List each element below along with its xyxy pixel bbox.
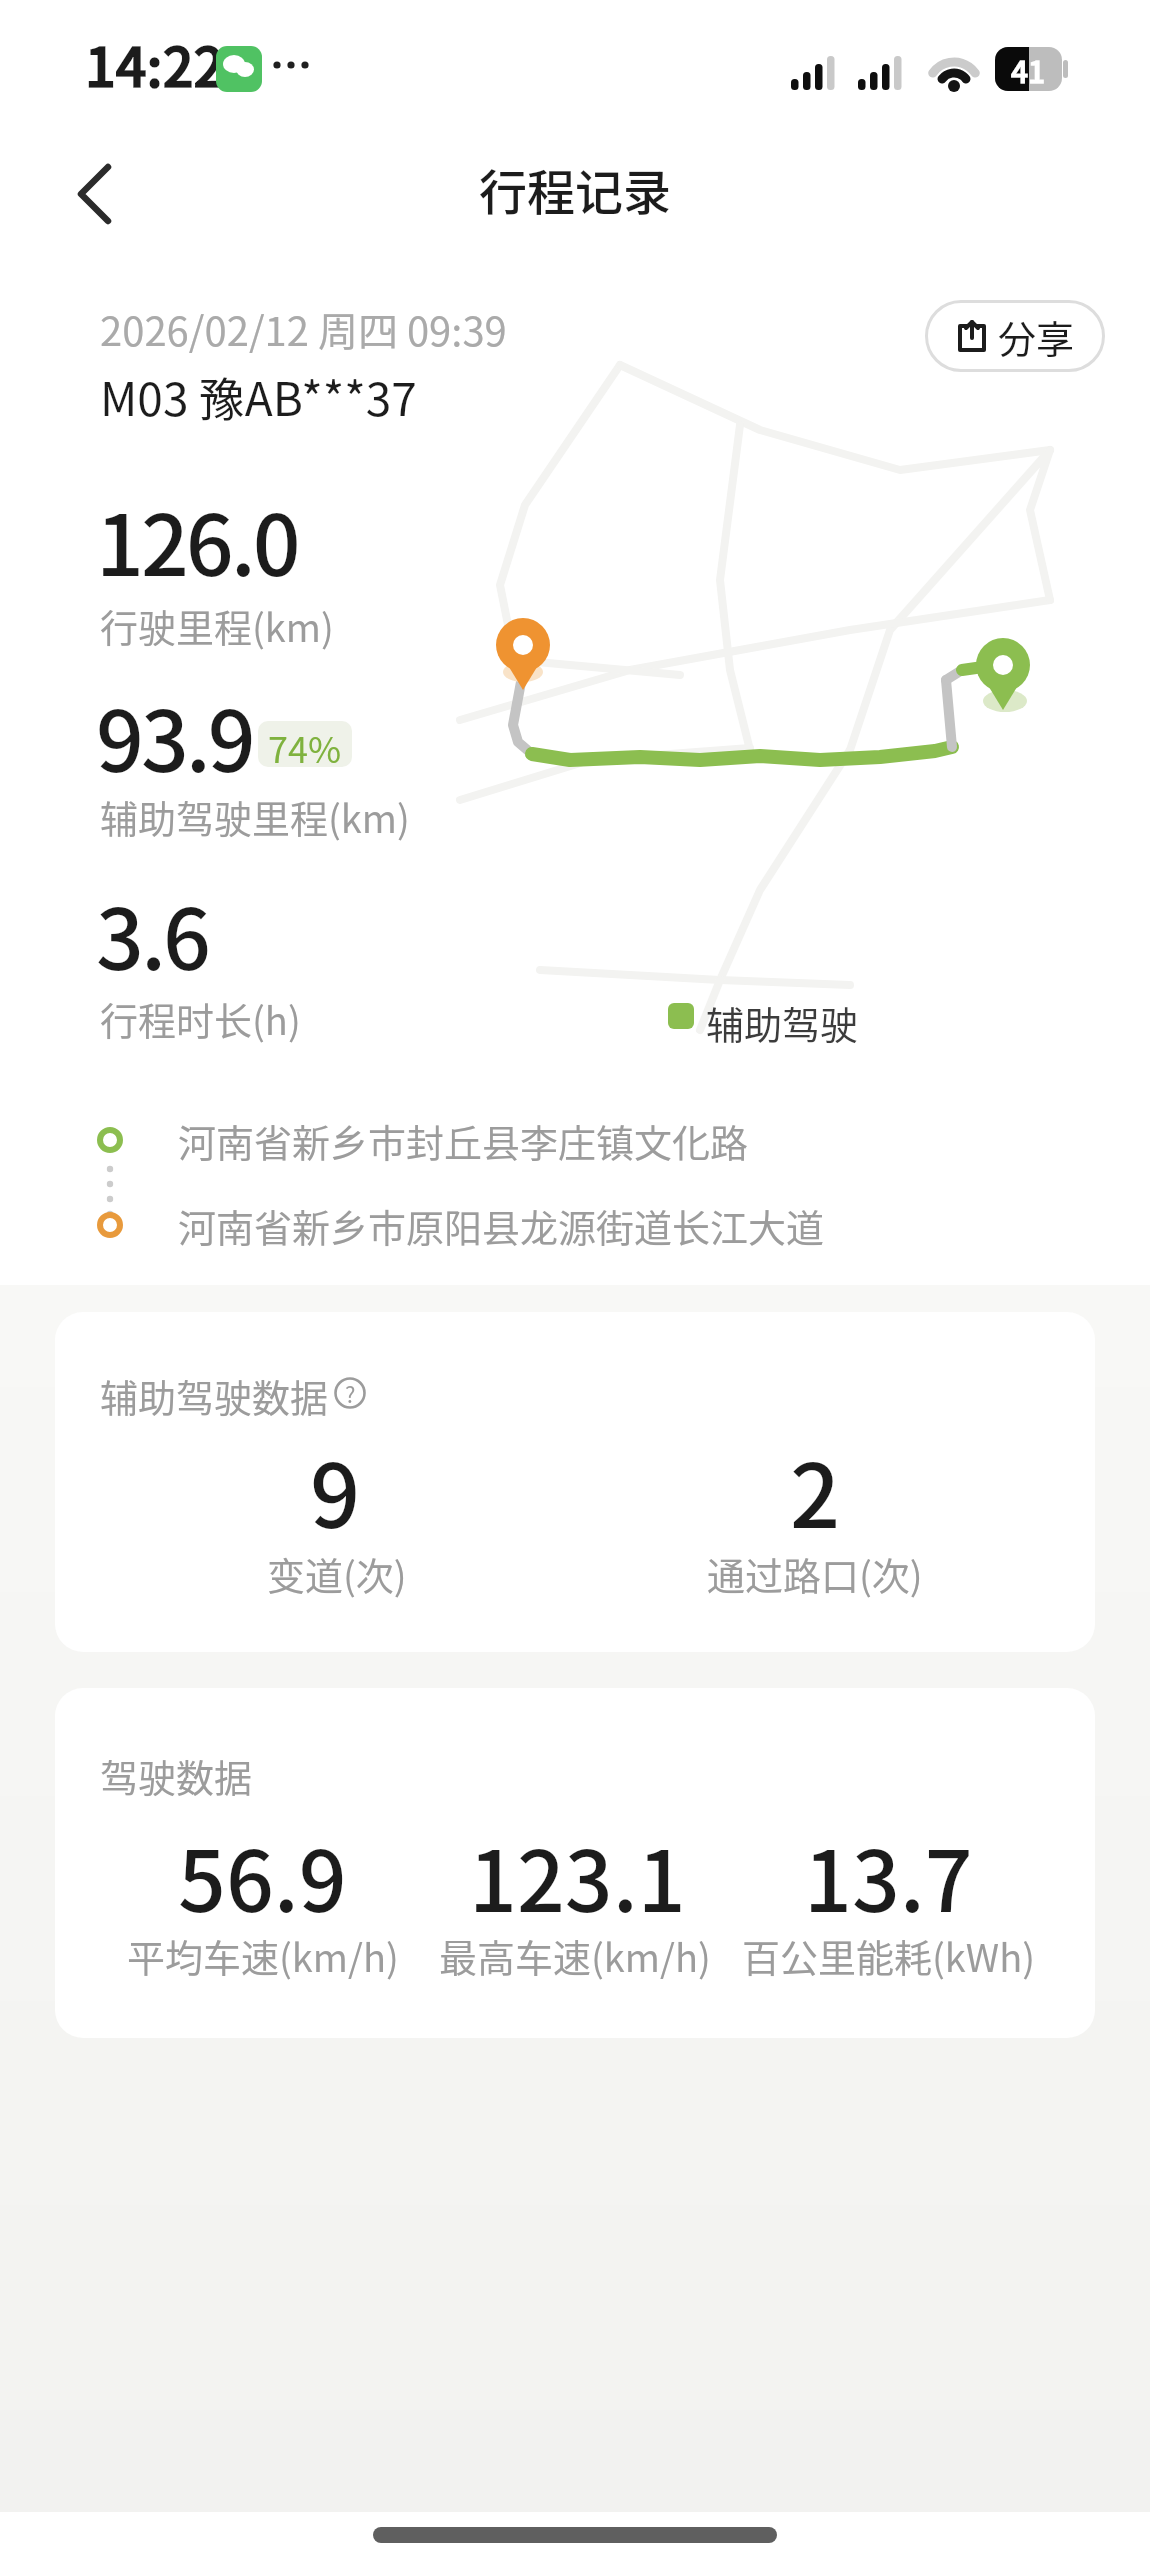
staticText: 13.7 xyxy=(804,1815,973,1935)
staticText: 河南省新乡市原阳县龙源街道长江大道 xyxy=(178,1198,825,1253)
staticText: 驾驶数据 xyxy=(100,1748,253,1803)
staticText: 最高车速(km/h) xyxy=(439,1928,711,1983)
staticText: 辅助驾驶数据 xyxy=(100,1368,329,1423)
staticText: 126.0 xyxy=(96,479,298,601)
staticText: M03 豫AB***37 xyxy=(100,363,417,430)
button[interactable] xyxy=(50,150,140,240)
staticText: 分享 xyxy=(998,309,1075,364)
staticText: 平均车速(km/h) xyxy=(127,1928,399,1983)
button[interactable]: 分享 xyxy=(925,300,1105,372)
button[interactable]: ? xyxy=(328,1371,372,1415)
staticText: 变道(次) xyxy=(267,1546,407,1601)
staticText: 3.6 xyxy=(96,873,208,995)
staticText: 14:22 xyxy=(85,24,225,102)
staticText: 百公里能耗(kWh) xyxy=(742,1928,1036,1983)
staticText: 辅助驾驶 xyxy=(706,995,859,1050)
staticText: 56.9 xyxy=(178,1815,347,1935)
staticText: 74% xyxy=(268,721,342,767)
staticText: 41 xyxy=(1011,48,1046,91)
staticText: 2026/02/12 周四 09:39 xyxy=(100,300,507,358)
staticText: 9 xyxy=(310,1426,361,1546)
staticText: 行程记录 xyxy=(479,154,672,224)
staticText: 通过路口(次) xyxy=(707,1546,923,1601)
staticText: 辅助驾驶里程(km) xyxy=(100,789,410,844)
staticText: 行程时长(h) xyxy=(100,991,301,1046)
staticText: 行驶里程(km) xyxy=(100,598,334,653)
staticText: 123.1 xyxy=(469,1815,686,1935)
staticText: ? xyxy=(345,1377,356,1409)
staticText: 河南省新乡市封丘县李庄镇文化路 xyxy=(178,1113,749,1168)
staticText: 93.9 xyxy=(96,675,253,797)
staticText: 2 xyxy=(790,1426,841,1546)
